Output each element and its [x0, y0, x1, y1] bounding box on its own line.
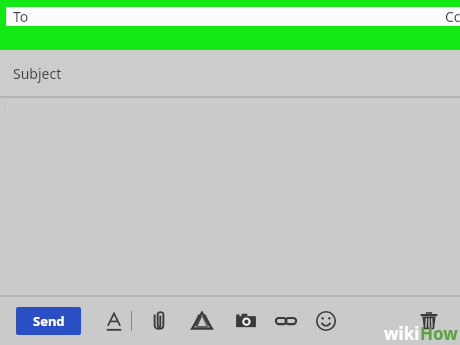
staticText: Subject — [13, 64, 62, 83]
staticText: To — [13, 7, 29, 26]
button[interactable]: Attach file — [142, 304, 176, 338]
button[interactable]: Formatting options — [97, 304, 131, 338]
staticText: Send — [33, 312, 65, 330]
button[interactable]: Insert emoji — [309, 304, 343, 338]
button[interactable]: Subject — [0, 50, 460, 96]
staticText: Cc — [445, 7, 460, 26]
staticText: How — [420, 322, 458, 345]
button[interactable]: Discard draft — [412, 304, 446, 338]
button[interactable]: To — [6, 7, 460, 26]
button[interactable]: Insert link — [269, 304, 303, 338]
button[interactable]: Insert photo — [229, 304, 263, 338]
button[interactable]: Send — [16, 307, 81, 335]
button[interactable]: Insert from Drive — [185, 304, 219, 338]
staticText: wiki — [384, 322, 420, 345]
